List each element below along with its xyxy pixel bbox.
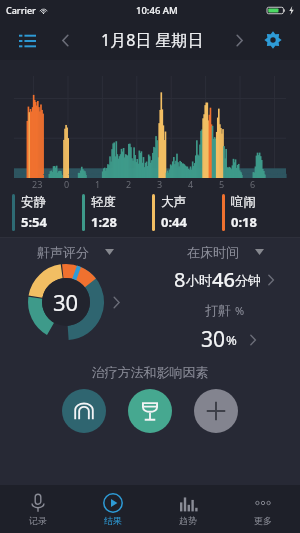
button[interactable]: 在床时间 (187, 244, 264, 260)
staticText: 23 (32, 178, 43, 190)
button[interactable]: 记录 (0, 485, 75, 533)
staticText: % (235, 303, 245, 318)
staticText: 5:54 (21, 213, 47, 231)
button[interactable]: 鼾声评分 (37, 244, 114, 260)
staticText: 8 (174, 266, 186, 293)
staticText: 30 (53, 287, 79, 317)
staticText: 3 (157, 178, 163, 190)
staticText: 趋势 (179, 515, 197, 526)
button[interactable]: Alcohol (128, 389, 172, 433)
staticText: 10:46 AM (136, 4, 178, 17)
staticText: Carrier (6, 4, 36, 16)
staticText: 记录 (29, 515, 47, 526)
staticText: 小时 (186, 272, 212, 288)
staticText: 在床时间 (187, 244, 239, 260)
staticText: 0:18 (231, 213, 257, 231)
staticText: 喧闹 (231, 194, 256, 210)
button[interactable]: 30 (150, 325, 300, 354)
staticText: 安静 (21, 194, 46, 210)
button[interactable]: 趋势 (150, 485, 225, 533)
staticText: 0 (64, 178, 70, 190)
button[interactable]: Mouthpiece (62, 389, 106, 433)
staticText: 更多 (254, 515, 272, 526)
button[interactable]: 结果 (75, 485, 150, 533)
staticText: 2 (126, 178, 132, 190)
button[interactable]: 更多 (225, 485, 300, 533)
staticText: 1月8日 星期日 (101, 29, 204, 51)
button[interactable]: 30 (28, 264, 123, 340)
button[interactable]: Add factor (194, 389, 238, 433)
staticText: 治疗方法和影响因素 (0, 364, 300, 380)
staticText: 打鼾 (205, 301, 235, 319)
staticText: 轻度 (91, 194, 116, 210)
staticText: 大声 (161, 194, 186, 210)
staticText: 6 (250, 178, 256, 190)
staticText: 鼾声评分 (37, 244, 89, 260)
button[interactable]: 8 (150, 266, 300, 293)
staticText: 5 (219, 178, 225, 190)
staticText: 30 (201, 325, 226, 354)
button[interactable]: Previous day (50, 25, 80, 55)
staticText: 结果 (104, 515, 122, 526)
staticText: 1:28 (91, 213, 117, 231)
button[interactable]: 打鼾 (205, 301, 245, 319)
button[interactable]: Settings (256, 23, 290, 57)
staticText: 分钟 (235, 272, 261, 288)
staticText: 4 (188, 178, 194, 190)
staticText: 0:44 (161, 213, 187, 231)
staticText: 1 (95, 178, 101, 190)
staticText: 46 (212, 266, 235, 293)
button[interactable]: Next day (224, 25, 254, 55)
staticText: % (226, 331, 237, 349)
button[interactable]: List (10, 23, 44, 57)
